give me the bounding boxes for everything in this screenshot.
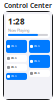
staticText: Wi-Fi: [34, 72, 40, 75]
staticText: 1:28: [8, 16, 25, 27]
staticText: Wi-Fi: [11, 57, 17, 60]
staticText: Wi-Fi: [11, 66, 17, 69]
staticText: Wi-Fi: [11, 75, 17, 78]
staticText: Wi-Fi: [34, 45, 40, 48]
staticText: Wi-Fi: [11, 45, 17, 48]
staticText: Wi-Fi: [34, 60, 40, 63]
staticText: Now Playing: [8, 28, 29, 33]
staticText: Control Center: [4, 1, 52, 10]
